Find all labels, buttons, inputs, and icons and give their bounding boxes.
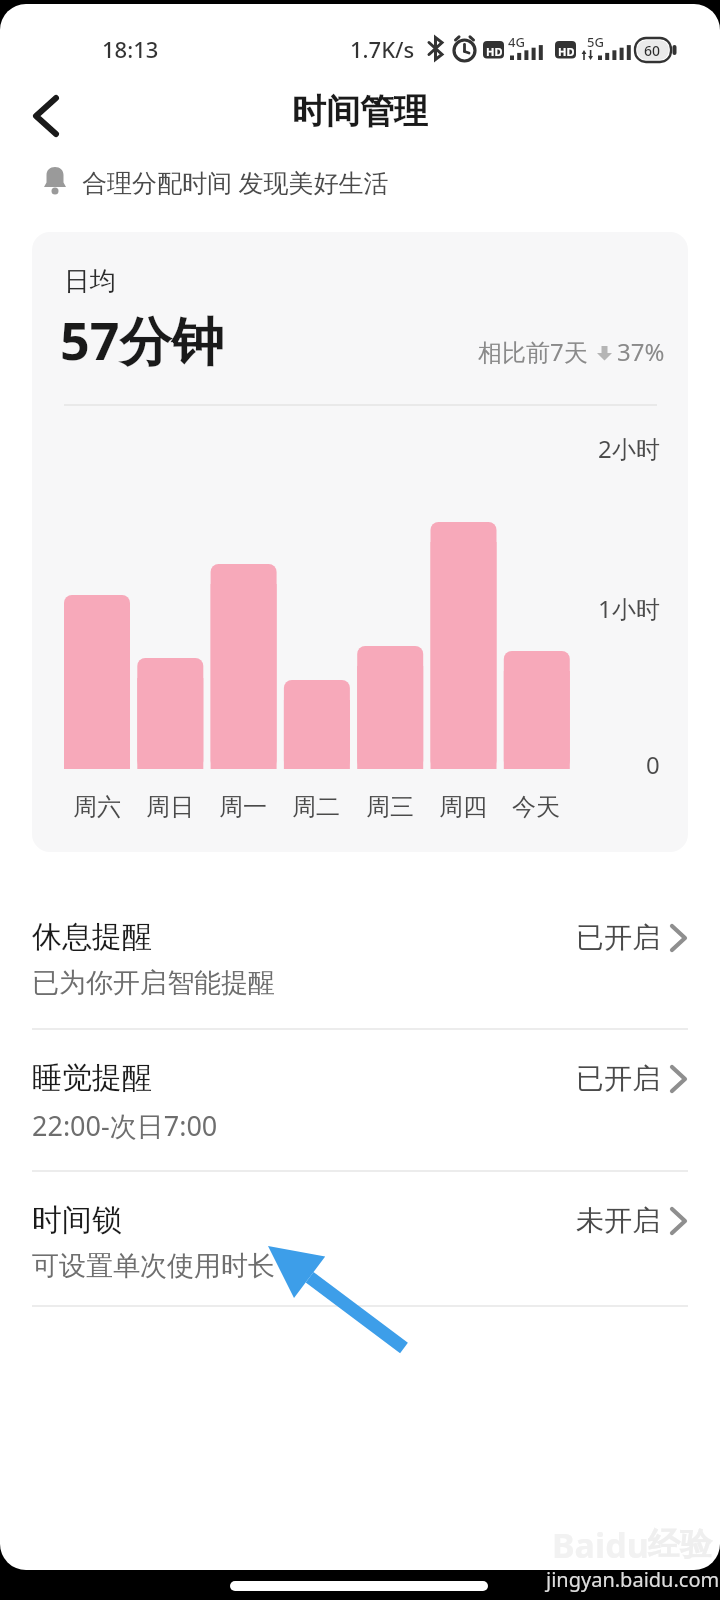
staticText: 1小时 [598,592,660,625]
staticText: jingyan.baidu.com [546,1566,720,1593]
staticText: 今天 [512,792,560,822]
staticText: 18:13 [102,34,159,64]
staticText: 休息提醒 [32,918,152,956]
staticText: 2小时 [598,432,660,465]
staticText: 可设置单次使用时长 [32,1249,275,1283]
staticText: 4G [508,33,525,51]
staticText: 周一 [219,792,267,822]
button[interactable]: 睡觉提醒 [0,1045,720,1169]
staticText: 合理分配时间 发现美好生活 [82,165,389,199]
button[interactable]: 时间锁 [0,1187,720,1311]
staticText: 未开启 [576,1203,660,1238]
staticText: 睡觉提醒 [32,1059,152,1097]
staticText: 57分钟 [60,304,224,375]
staticText: 时间锁 [32,1201,122,1239]
staticText: 日均 [64,265,116,298]
staticText: 相比前7天 [478,335,588,368]
staticText: 60 [644,41,661,60]
staticText: 已开启 [576,920,660,955]
button[interactable] [20,88,76,144]
staticText: 5G [587,33,604,51]
staticText: 周三 [366,792,414,822]
staticText: HD [558,44,575,59]
staticText: 经验 [648,1524,712,1564]
staticText: 周日 [146,792,194,822]
staticText: 37% [617,335,665,368]
staticText: 1.7K/s [350,34,415,64]
staticText: 已开启 [576,1061,660,1096]
staticText: 周六 [73,792,121,822]
staticText: 0 [646,748,660,781]
staticText: Baidu [552,1522,649,1568]
staticText: 已为你开启智能提醒 [32,966,275,1000]
staticText: 时间管理 [292,90,428,133]
staticText: 周四 [439,792,487,822]
button[interactable]: 休息提醒 [0,904,720,1028]
staticText: 22:00-次日7:00 [32,1107,218,1144]
staticText: 周二 [292,792,340,822]
staticText: HD [486,44,503,59]
